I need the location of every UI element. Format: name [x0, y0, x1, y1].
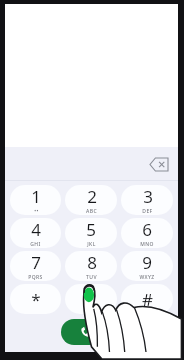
staticText: JKL	[87, 241, 96, 248]
staticText: 2	[87, 185, 97, 208]
staticText: 4	[31, 218, 41, 241]
staticText: 9	[142, 251, 152, 274]
staticText: PQRS	[28, 274, 43, 281]
button[interactable]: Backspace	[148, 155, 170, 173]
button[interactable]: 1	[10, 185, 61, 215]
staticText: #	[142, 288, 153, 311]
button[interactable]: #	[121, 284, 173, 314]
button[interactable]: 5	[65, 218, 117, 248]
staticText: DEF	[142, 208, 153, 215]
staticText: +	[89, 307, 93, 314]
button[interactable]: 4	[10, 218, 61, 248]
button[interactable]: Call	[61, 319, 111, 345]
staticText: 7	[31, 251, 41, 274]
button[interactable]: 2	[65, 185, 117, 215]
button[interactable]: 3	[121, 185, 173, 215]
button[interactable]: *	[10, 284, 61, 314]
staticText: ••	[34, 208, 39, 215]
button[interactable]: 0	[65, 284, 117, 314]
button[interactable]: 7	[10, 251, 61, 281]
staticText: GHI	[30, 241, 41, 248]
staticText: *	[31, 288, 41, 311]
staticText: 6	[142, 218, 152, 241]
button[interactable]: 8	[65, 251, 117, 281]
staticText: 3	[143, 185, 153, 208]
staticText: MNO	[140, 241, 154, 248]
staticText: 0	[86, 284, 96, 307]
button[interactable]: 6	[121, 218, 173, 248]
staticText: 8	[87, 251, 97, 274]
staticText: WXYZ	[139, 274, 155, 281]
staticText: ABC	[86, 208, 97, 215]
button[interactable]: 9	[121, 251, 173, 281]
staticText: 1	[31, 185, 41, 208]
staticText: TUV	[86, 274, 97, 281]
staticText: 5	[86, 218, 96, 241]
